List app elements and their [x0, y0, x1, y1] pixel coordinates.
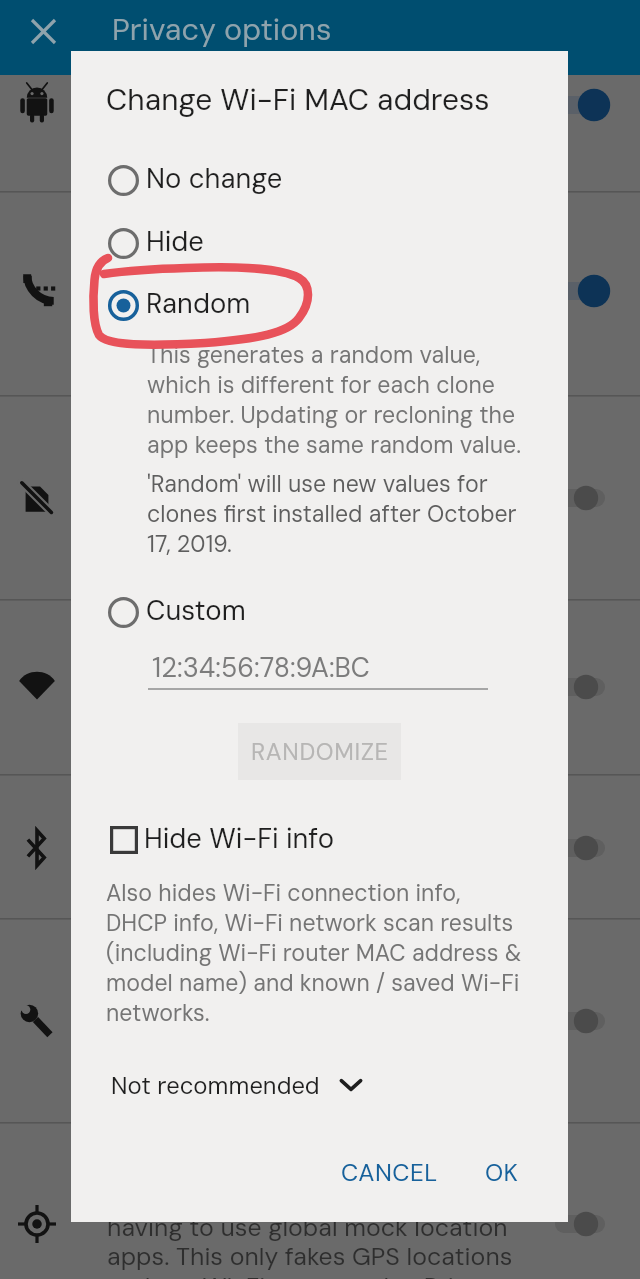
staticText: RANDOMIZE	[251, 736, 389, 767]
button[interactable]	[0, 1047, 640, 1204]
button[interactable]	[0, 843, 640, 1047]
button[interactable]	[0, 116, 640, 320]
staticText: Hide	[146, 224, 204, 260]
button[interactable]: No change	[71, 149, 568, 211]
button[interactable]: Close	[14, 2, 73, 61]
staticText: No change	[146, 161, 283, 197]
button[interactable]: RANDOMIZE	[238, 723, 401, 780]
button[interactable]	[0, 524, 640, 699]
button[interactable]	[0, 699, 640, 843]
staticText: Change Wi-Fi MAC address	[106, 80, 490, 119]
staticText: 'Random' will use new values for clones …	[147, 469, 517, 559]
button[interactable]	[0, 0, 640, 116]
button[interactable]: CANCEL	[327, 1145, 452, 1201]
staticText: Also hides Wi-Fi connection info, DHCP i…	[106, 878, 522, 1028]
button[interactable]: Hide Wi-Fi info	[71, 809, 568, 871]
button[interactable]: Not recommended	[111, 1063, 362, 1107]
staticText: Not recommended	[111, 1070, 320, 1101]
staticText: This generates a random value, which is …	[147, 340, 521, 460]
button[interactable]: Custom	[71, 581, 568, 643]
staticText: Custom	[146, 593, 246, 629]
button[interactable]: OK	[471, 1145, 533, 1201]
staticText: CANCEL	[341, 1157, 438, 1189]
button[interactable]	[0, 320, 640, 524]
staticText: Privacy options	[112, 10, 332, 50]
staticText: Hide Wi-Fi info	[144, 821, 335, 857]
staticText: Random	[146, 286, 251, 322]
staticText: OK	[485, 1157, 519, 1189]
staticText: 12:34:56:78:9A:BC	[152, 650, 370, 685]
button[interactable]: Hide	[71, 212, 568, 274]
button[interactable]: Random	[71, 274, 568, 336]
staticText: having to use global mock location apps.…	[107, 1211, 513, 1279]
